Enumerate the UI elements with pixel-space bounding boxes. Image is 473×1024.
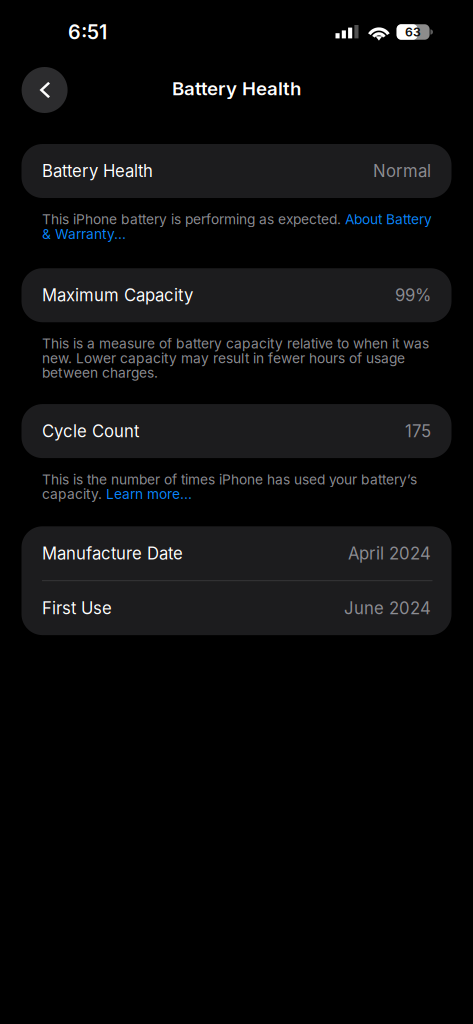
staticText: 6:51 bbox=[68, 20, 107, 44]
staticText: capacity. bbox=[42, 486, 106, 502]
staticText: June 2024 bbox=[344, 598, 431, 618]
staticText: 99% bbox=[395, 285, 431, 305]
staticText: Manufacture Date bbox=[42, 543, 183, 563]
staticText: Battery Health bbox=[42, 161, 153, 181]
button[interactable]: Cycle Count bbox=[21, 404, 451, 458]
staticText: April 2024 bbox=[348, 543, 431, 563]
staticText: Cycle Count bbox=[42, 421, 139, 441]
staticText: First Use bbox=[42, 598, 112, 618]
button[interactable]: & Warranty... bbox=[42, 226, 126, 242]
staticText: This iPhone battery is performing as exp… bbox=[42, 211, 345, 228]
staticText: This is a measure of battery capacity re… bbox=[42, 335, 429, 352]
button[interactable]: Learn more... bbox=[106, 486, 192, 502]
staticText: Battery Health bbox=[172, 77, 301, 100]
staticText: About Battery bbox=[345, 211, 432, 228]
button[interactable]: Battery Health bbox=[21, 144, 451, 198]
staticText: Maximum Capacity bbox=[42, 285, 193, 305]
staticText: 175 bbox=[405, 421, 431, 441]
button[interactable]: Back bbox=[22, 67, 68, 113]
staticText: 63 bbox=[405, 25, 421, 39]
staticText: & Warranty... bbox=[42, 226, 126, 242]
staticText: This is the number of times iPhone has u… bbox=[42, 471, 417, 488]
staticText: Learn more... bbox=[106, 486, 192, 502]
staticText: Normal bbox=[373, 161, 431, 181]
staticText: between charges. bbox=[42, 364, 158, 381]
button[interactable]: About Battery bbox=[345, 211, 432, 228]
button[interactable]: Maximum Capacity bbox=[21, 268, 451, 322]
staticText: new. Lower capacity may result in fewer … bbox=[42, 350, 405, 366]
